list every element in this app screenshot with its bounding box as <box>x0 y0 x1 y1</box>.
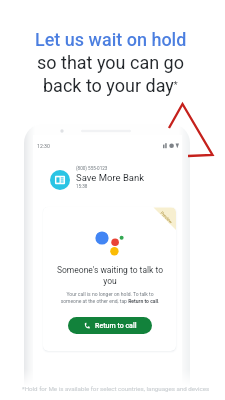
staticText: Someone's waiting to talk to you <box>54 265 166 286</box>
staticText: *Hold for Me is available for select cou… <box>22 385 210 392</box>
staticText: Return to call <box>95 322 137 330</box>
staticText: Save More Bank <box>76 172 145 183</box>
button[interactable]: Call <box>68 317 152 334</box>
other: Call <box>84 322 91 329</box>
staticText: 15:38 <box>76 184 88 189</box>
staticText: back to your day* <box>43 75 178 96</box>
staticText: 12:30 <box>37 143 50 149</box>
staticText: so that you can go <box>37 52 184 73</box>
staticText: Preview <box>159 210 173 224</box>
staticText: (800) 555-0123 <box>76 166 108 171</box>
staticText: Your call is no longer on hold. To talk … <box>59 291 161 305</box>
staticText: Let us wait on hold <box>35 29 187 50</box>
